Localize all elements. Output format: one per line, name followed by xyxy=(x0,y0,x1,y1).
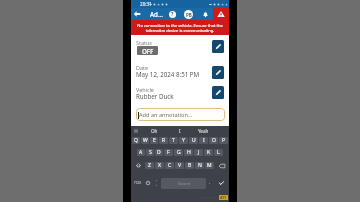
staticText: Q xyxy=(134,137,138,144)
staticText: M xyxy=(207,162,212,169)
staticText: No connection to the vehicle. Ensure tha… xyxy=(137,23,223,33)
staticText: Gboard xyxy=(178,181,190,186)
button[interactable]: Shift xyxy=(132,162,144,169)
staticText: L xyxy=(217,149,220,156)
button[interactable]: Notifications xyxy=(200,8,211,20)
staticText: ? xyxy=(171,11,174,18)
button[interactable]: Help xyxy=(167,8,178,20)
staticText: I xyxy=(203,137,205,144)
staticText: E xyxy=(153,137,156,144)
staticText: 5 xyxy=(173,137,175,140)
staticText: T xyxy=(172,137,175,144)
button[interactable]: Emoji xyxy=(142,177,153,189)
staticText: Oh xyxy=(151,128,158,134)
button[interactable]: Comma xyxy=(152,177,160,189)
button[interactable]: H xyxy=(184,149,193,156)
button[interactable]: 4 xyxy=(159,137,168,144)
staticText: Vehicle xyxy=(136,86,154,93)
button[interactable]: Oh xyxy=(143,126,166,136)
staticText: Y xyxy=(182,137,185,144)
staticText: R xyxy=(162,137,166,144)
staticText: D xyxy=(157,149,161,156)
staticText: 8 xyxy=(203,137,205,140)
staticText: K xyxy=(207,149,211,156)
staticText: 9 xyxy=(213,137,215,140)
button[interactable]: Symbols xyxy=(132,177,143,189)
button[interactable]: Edit Vehicle xyxy=(212,86,224,99)
staticText: 1 xyxy=(135,137,137,140)
button[interactable]: F xyxy=(164,149,173,156)
button[interactable]: Back xyxy=(131,8,143,20)
button[interactable]: S xyxy=(146,149,154,156)
button[interactable]: G xyxy=(174,149,183,156)
staticText: 6 xyxy=(183,137,185,140)
button[interactable]: 3 xyxy=(150,137,158,144)
staticText: PB xyxy=(186,12,192,18)
staticText: 3 xyxy=(153,137,155,140)
staticText: P xyxy=(222,137,226,144)
staticText: B xyxy=(188,162,192,169)
button[interactable]: 8 xyxy=(199,137,208,144)
staticText: 20:31 xyxy=(140,1,152,7)
button[interactable]: Backspace xyxy=(215,162,228,169)
button[interactable]: Keyboard settings xyxy=(132,126,139,136)
staticText: Status xyxy=(136,39,152,46)
button[interactable]: Account xyxy=(183,8,194,20)
staticText: J xyxy=(198,149,200,156)
button[interactable]: L xyxy=(214,149,223,156)
button[interactable]: K xyxy=(204,149,213,156)
staticText: F xyxy=(167,149,170,156)
button[interactable]: 9 xyxy=(209,137,218,144)
button[interactable]: 0 xyxy=(219,137,228,144)
staticText: A xyxy=(139,149,143,156)
button[interactable]: Yeah xyxy=(192,126,215,136)
staticText: 411 xyxy=(220,195,227,200)
button[interactable]: B xyxy=(185,162,194,169)
staticText: H xyxy=(187,149,191,156)
staticText: C xyxy=(168,162,172,169)
staticText: O xyxy=(212,137,216,144)
button[interactable]: Vehicle warning xyxy=(213,8,229,20)
button[interactable]: M xyxy=(205,162,214,169)
button[interactable]: Space xyxy=(161,178,206,189)
button[interactable]: OFF xyxy=(137,46,158,55)
button[interactable]: Edit Status xyxy=(212,40,224,53)
staticText: U xyxy=(192,137,196,144)
staticText: Z xyxy=(148,162,151,169)
button[interactable]: Z xyxy=(145,162,154,169)
button[interactable]: 7 xyxy=(189,137,198,144)
staticText: 0 xyxy=(223,137,225,140)
button[interactable]: Edit Date xyxy=(212,66,224,79)
staticText: G xyxy=(177,149,181,156)
staticText: 7 xyxy=(193,137,195,140)
button[interactable]: N xyxy=(195,162,204,169)
button[interactable]: C xyxy=(165,162,174,169)
staticText: OFF xyxy=(142,47,154,55)
button[interactable]: X xyxy=(155,162,164,169)
staticText: I xyxy=(179,128,181,134)
button[interactable]: 6 xyxy=(179,137,188,144)
button[interactable]: V xyxy=(175,162,184,169)
button[interactable]: 1 xyxy=(132,137,140,144)
staticText: N xyxy=(198,162,202,169)
staticText: May 12, 2024 8:51 PM xyxy=(136,70,200,78)
staticText: Yeah xyxy=(198,128,209,134)
staticText: 4 xyxy=(163,137,165,140)
staticText: V xyxy=(178,162,182,169)
button[interactable]: Done xyxy=(215,177,228,189)
staticText: X xyxy=(158,162,161,169)
button[interactable]: 2 xyxy=(141,137,149,144)
button[interactable]: A xyxy=(137,149,145,156)
button[interactable]: Period xyxy=(206,177,213,189)
staticText: ?123 xyxy=(134,181,141,185)
button[interactable]: J xyxy=(194,149,203,156)
button[interactable]: 5 xyxy=(169,137,178,144)
button[interactable]: D xyxy=(155,149,163,156)
staticText: Add an annotation... xyxy=(139,111,193,119)
staticText: W xyxy=(143,137,148,144)
staticText: Rubber Duck xyxy=(136,92,174,100)
staticText: 2 xyxy=(144,137,146,140)
button[interactable]: Add an annotation... xyxy=(136,108,225,121)
staticText: S xyxy=(149,149,152,156)
button[interactable]: I xyxy=(168,126,191,136)
